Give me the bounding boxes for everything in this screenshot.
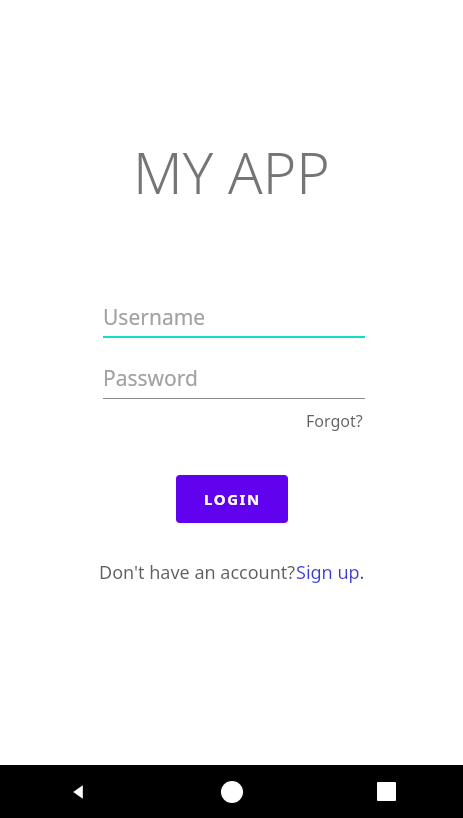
staticText: Sign up.	[296, 560, 365, 585]
button[interactable]: Forgot?	[304, 410, 365, 432]
button[interactable]: Sign up.	[296, 560, 365, 585]
staticText: LOGIN	[204, 489, 261, 509]
staticText: Username	[103, 303, 206, 332]
button[interactable]: LOGIN	[176, 475, 288, 523]
button[interactable]: Home	[155, 765, 309, 818]
staticText: MY APP	[0, 133, 463, 211]
staticText: Don't have an account?	[99, 560, 296, 585]
button[interactable]: Recent apps	[309, 765, 463, 818]
button[interactable]: Username	[103, 303, 365, 338]
button[interactable]: Back	[0, 765, 155, 818]
button[interactable]: Password	[103, 364, 365, 399]
staticText: Forgot?	[306, 410, 363, 432]
staticText: Password	[103, 364, 198, 393]
